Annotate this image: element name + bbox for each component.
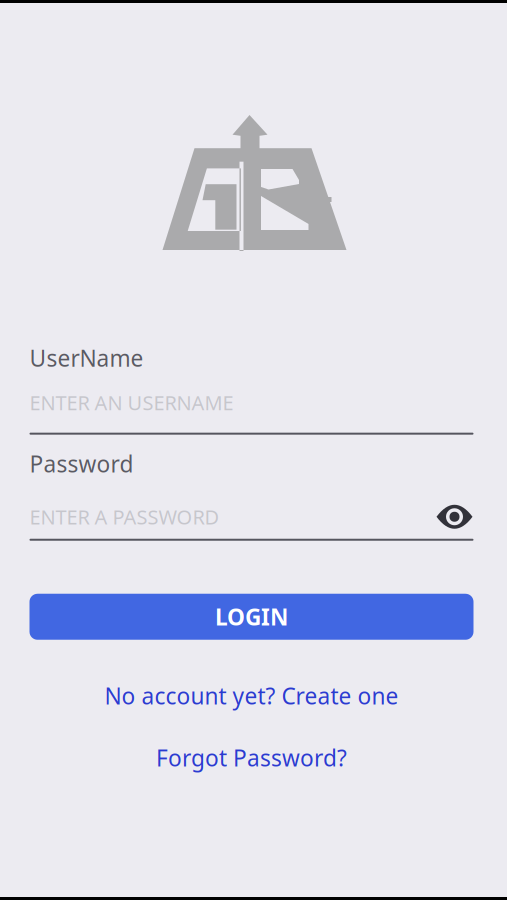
staticText: LOGIN	[215, 602, 288, 632]
staticText: Password	[29, 449, 133, 479]
button[interactable]: Forgot Password?	[29, 746, 473, 770]
staticText: Forgot Password?	[156, 743, 347, 773]
button[interactable]: Show password	[435, 503, 473, 531]
button[interactable]: LOGIN	[29, 594, 473, 640]
staticText: UserName	[29, 343, 143, 373]
button[interactable]: No account yet? Create one	[29, 684, 473, 708]
staticText: No account yet? Create one	[104, 681, 398, 711]
staticText: ENTER A PASSWORD	[29, 503, 219, 530]
staticText: ENTER AN USERNAME	[29, 389, 233, 416]
